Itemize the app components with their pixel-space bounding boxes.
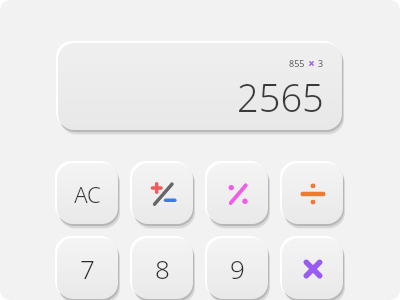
button[interactable]: 855 xyxy=(58,43,342,130)
button[interactable]: Multiply xyxy=(282,238,343,299)
button[interactable]: 9 xyxy=(207,238,268,299)
button[interactable]: AC xyxy=(57,163,118,224)
staticText: 7 xyxy=(80,251,95,286)
staticText: 855 xyxy=(289,57,305,69)
staticText: 3 xyxy=(318,57,324,69)
button[interactable]: 7 xyxy=(57,238,118,299)
staticText: AC xyxy=(74,179,101,209)
button[interactable]: 8 xyxy=(132,238,193,299)
staticText: 2565 xyxy=(237,71,324,123)
button[interactable]: Plus minus xyxy=(132,163,193,224)
button[interactable]: Percent xyxy=(207,163,268,224)
staticText: 8 xyxy=(155,251,170,286)
button[interactable]: Divide xyxy=(282,163,343,224)
staticText: 9 xyxy=(230,251,245,286)
